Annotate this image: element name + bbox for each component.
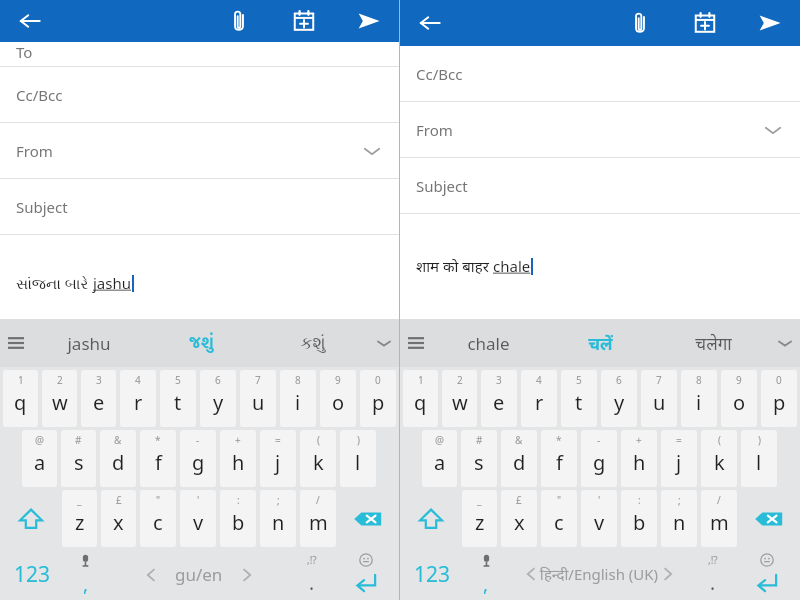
staticText: शाम को बाहर bbox=[416, 256, 493, 276]
button[interactable]: Back bbox=[14, 5, 46, 37]
staticText: x bbox=[514, 509, 525, 536]
button[interactable]: More suggestions bbox=[369, 319, 399, 367]
button[interactable]: / bbox=[300, 490, 336, 547]
button[interactable]: चलें bbox=[544, 319, 657, 367]
button[interactable]: 0 bbox=[761, 370, 797, 427]
button[interactable]: Back bbox=[414, 7, 446, 39]
button[interactable]: 8 bbox=[280, 370, 316, 427]
button[interactable]: £ bbox=[101, 490, 136, 547]
button[interactable]: Shift bbox=[401, 490, 460, 547]
button[interactable]: / bbox=[701, 490, 737, 547]
button[interactable]: To bbox=[0, 42, 399, 66]
button[interactable]: _ bbox=[462, 490, 497, 547]
button[interactable]: = bbox=[260, 430, 296, 487]
button[interactable]: Shift bbox=[1, 490, 60, 547]
button[interactable]: જશું bbox=[145, 319, 257, 367]
button[interactable]: _ bbox=[62, 490, 97, 547]
button[interactable]: 7 bbox=[240, 370, 276, 427]
button[interactable]: Voice input bbox=[64, 550, 107, 598]
button[interactable]: From bbox=[400, 102, 800, 157]
button[interactable]: કશું bbox=[257, 319, 369, 367]
button[interactable]: - bbox=[180, 430, 216, 487]
button[interactable]: 6 bbox=[601, 370, 637, 427]
button[interactable]: 7 bbox=[641, 370, 677, 427]
button[interactable]: ' bbox=[180, 490, 216, 547]
button[interactable]: Add to calendar bbox=[689, 7, 721, 39]
button[interactable]: & bbox=[100, 430, 136, 487]
button[interactable]: Cc/Bcc bbox=[0, 67, 399, 122]
button[interactable]: 8 bbox=[681, 370, 717, 427]
button[interactable]: * bbox=[541, 430, 577, 487]
staticText: : bbox=[638, 493, 641, 507]
button[interactable]: @ bbox=[22, 430, 57, 487]
button[interactable]: ,!? bbox=[691, 550, 735, 598]
button[interactable]: ; bbox=[661, 490, 697, 547]
button[interactable]: More suggestions bbox=[770, 319, 800, 367]
button[interactable]: चलेगा bbox=[657, 319, 770, 367]
button[interactable]: 123 bbox=[1, 550, 64, 598]
button[interactable]: हिन्दी/English (UK) bbox=[508, 550, 691, 598]
button[interactable]: £ bbox=[501, 490, 537, 547]
button[interactable]: Subject bbox=[0, 179, 399, 234]
button[interactable]: Subject bbox=[400, 158, 800, 213]
button[interactable]: 2 bbox=[42, 370, 77, 427]
button[interactable]: : bbox=[621, 490, 657, 547]
button[interactable]: ' bbox=[581, 490, 617, 547]
button[interactable]: Enter bbox=[735, 550, 799, 598]
button[interactable]: jashu bbox=[32, 319, 145, 367]
button[interactable]: + bbox=[220, 430, 256, 487]
button[interactable]: 2 bbox=[442, 370, 477, 427]
button[interactable]: Send bbox=[754, 7, 786, 39]
button[interactable]: gu/en bbox=[107, 550, 290, 598]
button[interactable]: " bbox=[541, 490, 577, 547]
button[interactable]: Add to calendar bbox=[288, 5, 320, 37]
button[interactable]: * bbox=[140, 430, 176, 487]
button[interactable]: Enter bbox=[334, 550, 398, 598]
button[interactable]: Attach bbox=[223, 5, 255, 37]
staticText: m bbox=[710, 509, 729, 536]
button[interactable]: chale bbox=[432, 319, 544, 367]
button[interactable]: @ bbox=[422, 430, 457, 487]
staticText: ; bbox=[277, 493, 280, 507]
button[interactable]: 1 bbox=[403, 370, 438, 427]
button[interactable]: 9 bbox=[721, 370, 757, 427]
button[interactable]: - bbox=[581, 430, 617, 487]
button[interactable]: ) bbox=[340, 430, 376, 487]
button[interactable]: 5 bbox=[160, 370, 196, 427]
button[interactable]: ( bbox=[701, 430, 737, 487]
staticText: ; bbox=[678, 493, 681, 507]
button[interactable]: & bbox=[501, 430, 537, 487]
button[interactable]: : bbox=[220, 490, 256, 547]
staticText: @ bbox=[35, 433, 44, 447]
button[interactable]: 123 bbox=[401, 550, 464, 598]
button[interactable]: 5 bbox=[561, 370, 597, 427]
button[interactable]: ,!? bbox=[290, 550, 334, 598]
button[interactable]: 9 bbox=[320, 370, 356, 427]
button[interactable]: ; bbox=[260, 490, 296, 547]
button[interactable]: = bbox=[661, 430, 697, 487]
button[interactable]: 6 bbox=[200, 370, 236, 427]
button[interactable]: ) bbox=[741, 430, 777, 487]
staticText: : bbox=[237, 493, 240, 507]
button[interactable]: 3 bbox=[481, 370, 517, 427]
button[interactable]: + bbox=[621, 430, 657, 487]
button[interactable]: Backspace bbox=[338, 490, 398, 547]
button[interactable]: Cc/Bcc bbox=[400, 46, 800, 101]
button[interactable]: 3 bbox=[81, 370, 116, 427]
button[interactable]: 0 bbox=[360, 370, 396, 427]
button[interactable]: 4 bbox=[521, 370, 557, 427]
button[interactable]: Keyboard menu bbox=[0, 319, 32, 367]
button[interactable]: 4 bbox=[120, 370, 156, 427]
button[interactable]: # bbox=[61, 430, 96, 487]
staticText: i bbox=[696, 389, 702, 416]
button[interactable]: Keyboard menu bbox=[400, 319, 432, 367]
button[interactable]: Attach bbox=[624, 7, 656, 39]
button[interactable]: Send bbox=[353, 5, 385, 37]
button[interactable]: ( bbox=[300, 430, 336, 487]
button[interactable]: " bbox=[140, 490, 176, 547]
button[interactable]: Backspace bbox=[739, 490, 799, 547]
button[interactable]: Voice input bbox=[464, 550, 508, 598]
button[interactable]: # bbox=[461, 430, 497, 487]
button[interactable]: 1 bbox=[3, 370, 38, 427]
button[interactable]: From bbox=[0, 123, 399, 178]
